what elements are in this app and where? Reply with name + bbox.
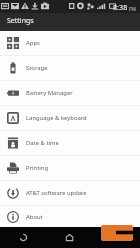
staticText: Storage: [26, 64, 48, 72]
button[interactable]: About: [0, 206, 140, 227]
button[interactable]: Language & keyboard: [0, 106, 140, 130]
button[interactable]: Date & time: [0, 131, 140, 155]
staticText: 8:38: [113, 2, 128, 12]
staticText: Battery Manager: [26, 89, 73, 97]
button[interactable]: Printing: [0, 156, 140, 180]
staticText: Printing: [26, 164, 49, 172]
staticText: Language & keyboard: [26, 114, 87, 122]
button[interactable]: Storage: [0, 56, 140, 80]
button[interactable]: Home: [46, 227, 93, 248]
button[interactable]: Back: [0, 227, 46, 248]
staticText: Settings: [7, 16, 34, 26]
button[interactable]: Recent apps: [93, 227, 140, 248]
staticText: Apps: [26, 39, 40, 47]
staticText: AT&T software update: [26, 189, 87, 197]
button[interactable]: Apps: [0, 31, 140, 55]
button[interactable]: AT&T software update: [0, 181, 140, 205]
staticText: Date & time: [26, 139, 59, 147]
staticText: PM: [129, 6, 136, 12]
button[interactable]: Settings: [0, 13, 140, 31]
button[interactable]: Battery Manager: [0, 81, 140, 105]
staticText: About: [26, 213, 43, 221]
